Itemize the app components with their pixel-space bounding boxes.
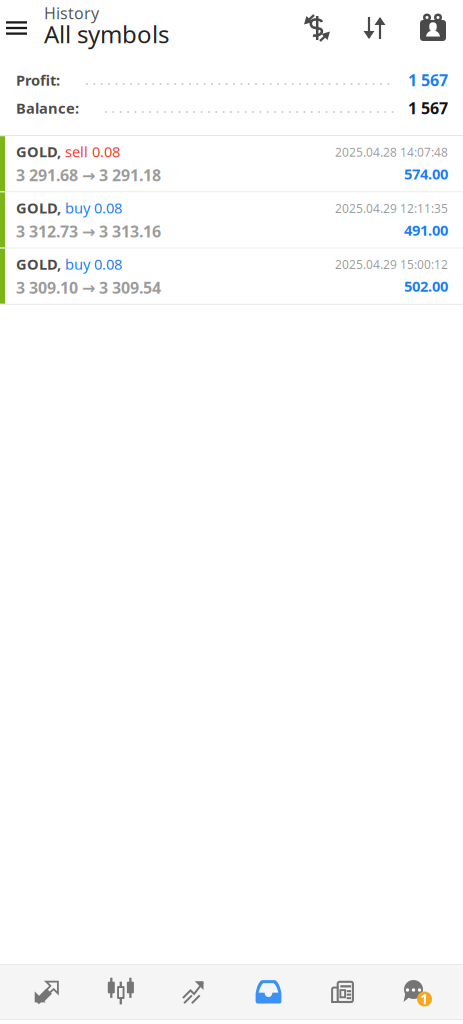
staticText: GOLD, — [16, 198, 61, 218]
staticText: 2025.04.28 14:07:48 — [335, 144, 448, 160]
button[interactable]: Currency — [288, 0, 346, 56]
button[interactable]: GOLD, — [0, 192, 463, 248]
staticText: sell 0.08 — [61, 142, 120, 161]
staticText: Profit: — [16, 70, 60, 90]
staticText: 502.00 — [404, 276, 448, 296]
button[interactable]: News — [305, 965, 379, 1019]
staticText: 3 309.10 → 3 309.54 — [16, 277, 161, 298]
staticText: buy 0.08 — [61, 254, 122, 274]
button[interactable]: Quotes — [9, 965, 83, 1019]
staticText: History — [44, 2, 99, 24]
staticText: GOLD, — [16, 142, 61, 161]
staticText: 2025.04.29 15:00:12 — [335, 256, 448, 272]
staticText: All symbols — [44, 18, 169, 50]
button[interactable]: Messages — [379, 965, 453, 1019]
staticText: 3 312.73 → 3 313.16 — [16, 221, 161, 242]
button[interactable]: Sort — [346, 0, 404, 56]
staticText: Balance: — [16, 98, 79, 118]
staticText: 574.00 — [404, 164, 448, 183]
button[interactable]: Charts — [83, 965, 157, 1019]
button[interactable]: Account — [404, 0, 462, 56]
staticText: 3 291.68 → 3 291.18 — [16, 164, 161, 186]
staticText: 1 — [420, 990, 428, 1008]
button[interactable]: GOLD, — [0, 136, 463, 191]
staticText: 1 567 — [408, 69, 448, 91]
button[interactable]: Trade — [157, 965, 231, 1019]
staticText: 1 567 — [408, 97, 448, 119]
staticText: 2025.04.29 12:11:35 — [335, 200, 448, 216]
button[interactable]: GOLD, — [0, 249, 463, 304]
button[interactable]: History — [231, 965, 305, 1019]
staticText: buy 0.08 — [61, 198, 122, 218]
staticText: 491.00 — [404, 220, 448, 240]
staticText: GOLD, — [16, 254, 61, 274]
button[interactable]: Menu — [0, 0, 33, 56]
